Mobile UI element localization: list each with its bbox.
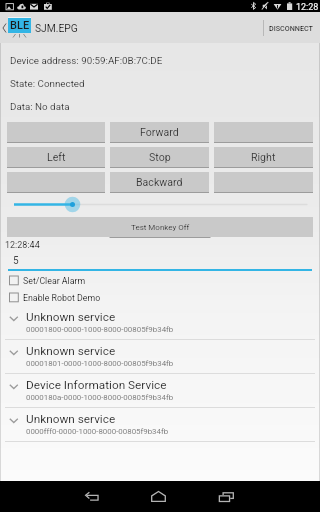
button[interactable]: Device Information Service — [0, 374, 320, 408]
button[interactable]: Test Monkey Off — [7, 217, 313, 238]
staticText: Forward — [140, 126, 179, 138]
staticText: Data: No data — [10, 101, 70, 112]
staticText: DISCONNECT — [269, 24, 313, 32]
staticText: Test Monkey Off — [131, 223, 190, 232]
staticText: 0000180a-0000-1000-8000-00805f9b34fb — [26, 393, 174, 402]
button[interactable]: DISCONNECT — [264, 12, 318, 43]
button[interactable]: Stop — [110, 147, 209, 168]
staticText: 12:28 — [296, 2, 319, 13]
button[interactable] — [214, 172, 313, 193]
staticText: SJM.EPG — [35, 22, 78, 34]
button[interactable] — [7, 122, 105, 143]
staticText: 00001800-0000-1000-8000-00805f9b34fb — [26, 325, 174, 334]
staticText: Set/Clear Alarm — [23, 276, 86, 286]
staticText: 12:28:44 — [5, 240, 40, 251]
staticText: 0000fff0-0000-1000-8000-00805f9b34fb — [26, 427, 169, 436]
button[interactable]: Unknown service — [0, 306, 320, 340]
button[interactable]: Forward — [110, 122, 209, 143]
button[interactable]: Recent apps — [192, 481, 260, 512]
button[interactable] — [214, 122, 313, 143]
button[interactable]: Set/Clear Alarm — [0, 272, 320, 289]
staticText: State: Connected — [10, 78, 85, 89]
staticText: Device address: 90:59:AF:0B:7C:DE — [10, 55, 163, 66]
staticText: Stop — [149, 151, 171, 163]
staticText: Enable Robot Demo — [23, 293, 101, 303]
staticText: Unknown service — [26, 412, 116, 426]
button[interactable]: Back — [62, 481, 124, 512]
staticText: Unknown service — [26, 310, 116, 324]
staticText: Device Information Service — [26, 378, 167, 392]
button[interactable]: Home — [124, 481, 192, 512]
staticText: Unknown service — [26, 344, 116, 358]
button[interactable]: Backward — [110, 172, 209, 193]
staticText: BLE — [10, 19, 30, 32]
button[interactable] — [0, 196, 320, 213]
staticText: Left — [47, 151, 66, 163]
button[interactable] — [7, 172, 105, 193]
button[interactable]: Left — [7, 147, 105, 168]
button[interactable]: Enable Robot Demo — [0, 289, 320, 306]
button[interactable]: Right — [214, 147, 313, 168]
staticText: 5 — [13, 255, 19, 267]
staticText: Backward — [136, 176, 183, 188]
staticText: 00001801-0000-1000-8000-00805f9b34fb — [26, 359, 174, 368]
staticText: Right — [251, 151, 276, 163]
button[interactable]: Unknown service — [0, 340, 320, 374]
button[interactable]: Unknown service — [0, 408, 320, 442]
